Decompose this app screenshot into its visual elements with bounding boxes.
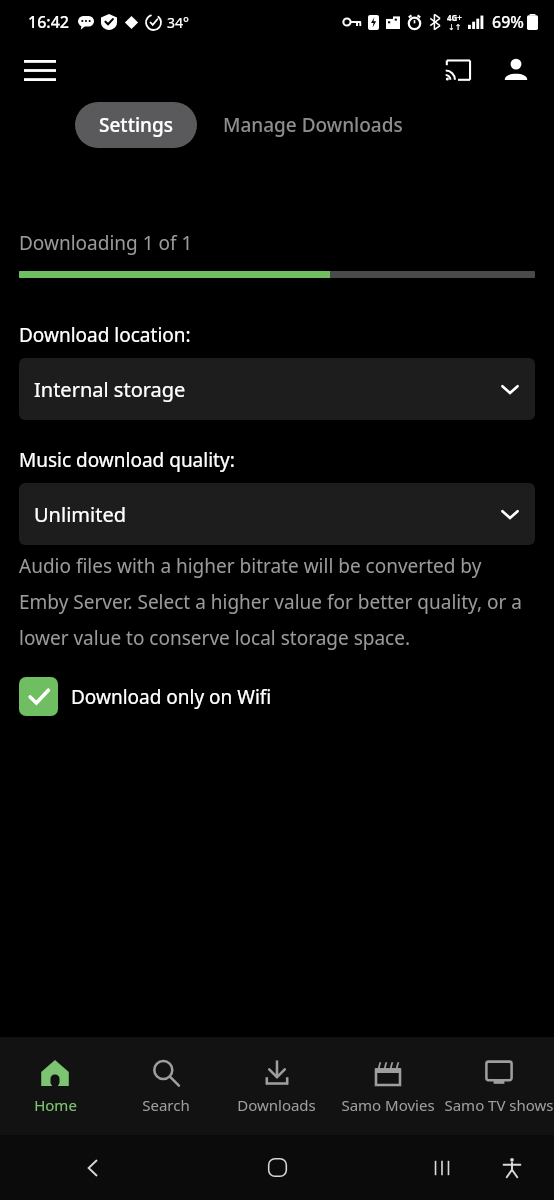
button[interactable]: Home (217, 1135, 337, 1200)
button[interactable]: Search (110, 1037, 221, 1135)
staticText: Search (142, 1095, 190, 1115)
button[interactable]: Downloads (221, 1037, 332, 1135)
staticText: Internal storage (34, 376, 186, 403)
staticText: 34° (167, 13, 190, 32)
staticText: Home (34, 1095, 77, 1115)
button[interactable]: Open navigation menu (16, 46, 64, 94)
staticText: 16:42 (28, 11, 69, 33)
button[interactable]: Home (0, 1037, 110, 1135)
staticText: Samo TV shows (444, 1095, 554, 1115)
staticText: Music download quality: (19, 447, 235, 473)
button[interactable]: Download only on Wifi (19, 677, 272, 716)
staticText: 69% (492, 11, 524, 33)
staticText: Settings (99, 112, 173, 138)
staticText: Unlimited (34, 501, 126, 528)
button[interactable]: Cast (434, 46, 482, 94)
staticText: Download only on Wifi (71, 684, 272, 710)
button[interactable]: Settings (75, 102, 197, 148)
staticText: Samo Movies (341, 1095, 435, 1115)
button[interactable]: Samo Movies (332, 1037, 443, 1135)
staticText: 4G+ (447, 12, 462, 23)
staticText: Audio files with a higher bitrate will b… (19, 553, 535, 651)
button[interactable]: Internal storage (19, 358, 535, 420)
staticText: ↓↑ (448, 23, 462, 32)
staticText: Manage Downloads (223, 112, 403, 138)
button[interactable]: Unlimited (19, 483, 535, 545)
staticText: Download location: (19, 322, 191, 348)
button[interactable]: Back (0, 1135, 185, 1200)
staticText: Downloading 1 of 1 (19, 230, 193, 256)
button[interactable]: Manage Downloads (197, 102, 429, 148)
button[interactable]: Accessibility (488, 1144, 536, 1192)
button[interactable]: Account (492, 46, 540, 94)
button[interactable]: Samo TV shows (443, 1037, 554, 1135)
button[interactable]: Recent apps (418, 1144, 466, 1192)
staticText: Downloads (237, 1095, 316, 1115)
